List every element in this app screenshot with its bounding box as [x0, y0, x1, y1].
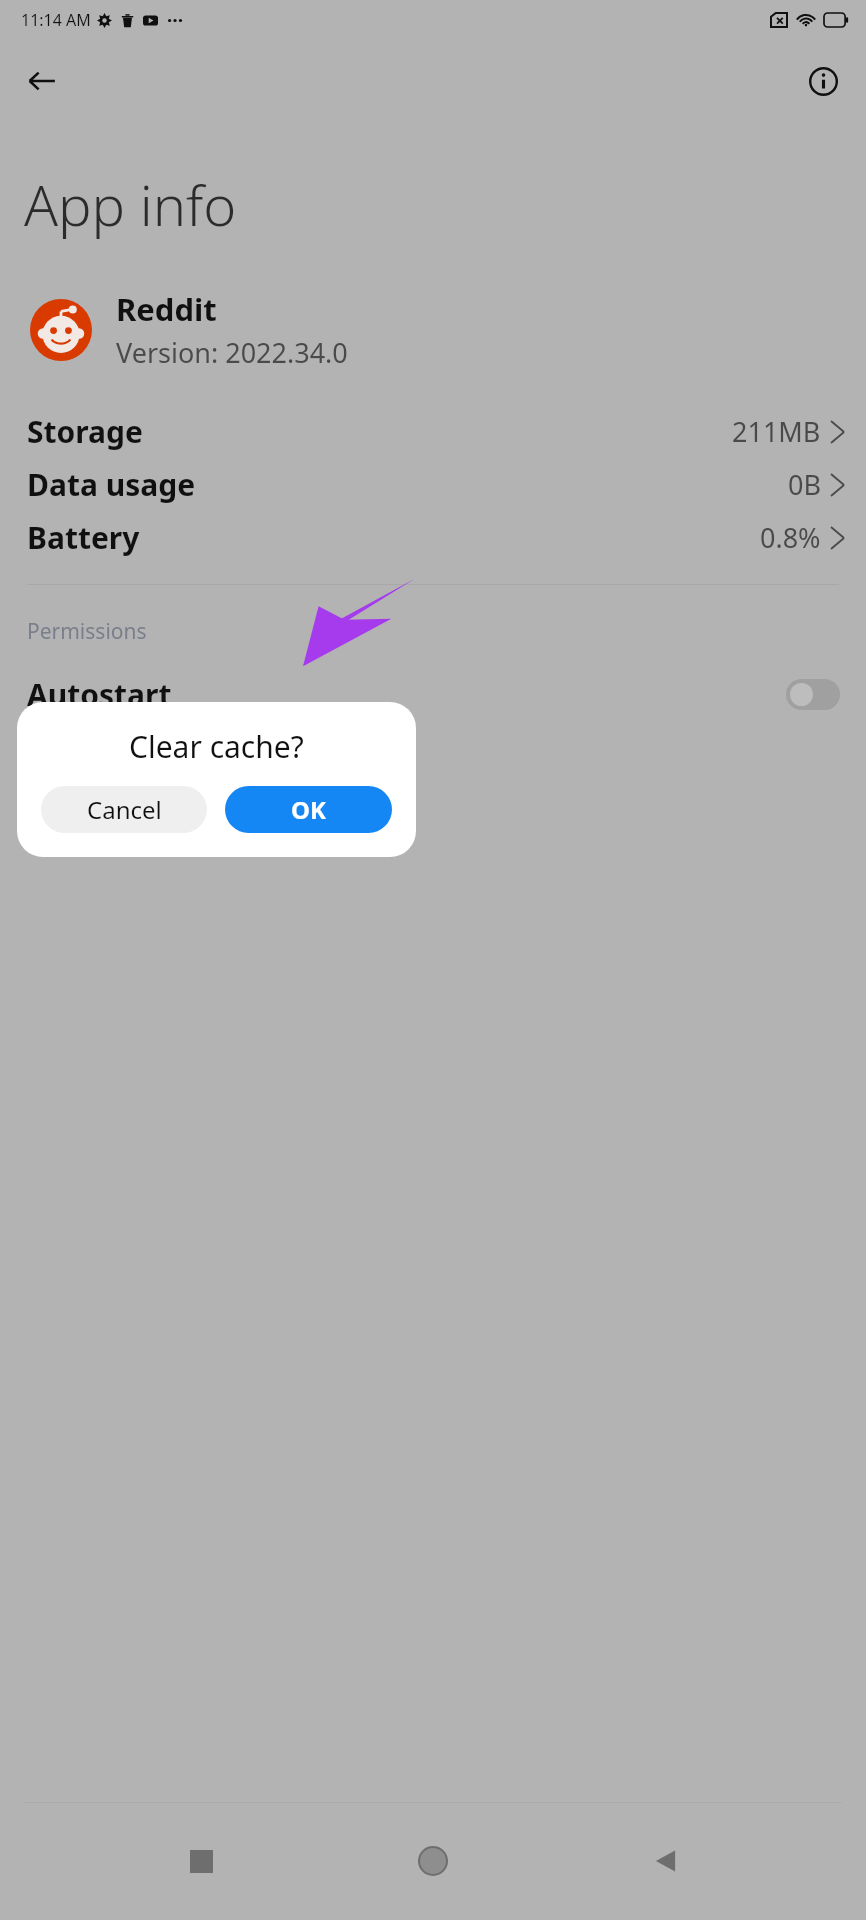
button[interactable]: Storage — [0, 405, 866, 458]
staticText: Clear cache? — [129, 726, 304, 767]
button[interactable]: Back — [634, 1829, 698, 1893]
staticText: OK — [291, 793, 326, 826]
button[interactable]: OK — [225, 786, 392, 833]
staticText: Permissions — [27, 617, 147, 646]
staticText: 0.8% — [760, 519, 821, 556]
staticText: 211MB — [732, 413, 821, 450]
button[interactable]: App permissions — [0, 734, 866, 787]
staticText: Battery — [27, 517, 140, 558]
staticText: Reddit — [116, 288, 217, 330]
button[interactable]: Cancel — [41, 786, 207, 833]
staticText: 0B — [788, 466, 821, 503]
button[interactable]: App details — [797, 55, 849, 107]
button[interactable]: Reddit — [0, 288, 866, 371]
button[interactable]: Data usage — [0, 458, 866, 511]
button[interactable]: Battery — [0, 511, 866, 564]
staticText: Storage — [27, 411, 143, 452]
button[interactable]: Autostart — [0, 668, 866, 720]
staticText: Version: 2022.34.0 — [116, 334, 348, 371]
staticText: Data usage — [27, 464, 196, 505]
button[interactable]: Home — [401, 1829, 465, 1893]
button[interactable]: Recent apps — [169, 1829, 233, 1893]
staticText: Autostart — [27, 674, 172, 715]
staticText: Cancel — [87, 793, 162, 826]
staticText: App info — [24, 166, 237, 242]
button[interactable]: Back — [14, 53, 70, 109]
staticText: 11:14 AM — [21, 9, 91, 31]
